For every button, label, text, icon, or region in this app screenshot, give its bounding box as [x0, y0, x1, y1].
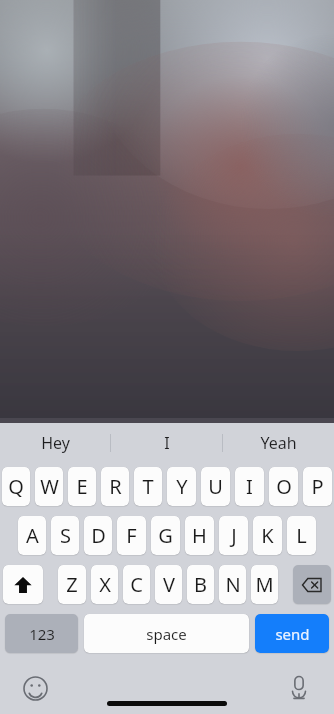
button[interactable]: Dictation — [282, 671, 316, 705]
staticText: send — [275, 624, 310, 644]
button[interactable]: A — [18, 516, 46, 555]
staticText: L — [296, 522, 307, 549]
button[interactable]: K — [253, 516, 282, 555]
staticText: Hey — [41, 432, 70, 454]
button[interactable]: U — [201, 467, 230, 506]
staticText: K — [261, 522, 274, 549]
staticText: Z — [66, 571, 78, 598]
button[interactable]: send — [255, 614, 329, 653]
button[interactable]: W — [35, 467, 63, 506]
staticText: F — [126, 522, 137, 549]
staticText: W — [40, 473, 59, 500]
staticText: U — [208, 473, 223, 500]
staticText: X — [99, 571, 111, 598]
staticText: N — [225, 571, 241, 598]
staticText: A — [26, 522, 39, 549]
staticText: B — [194, 571, 207, 598]
button[interactable]: J — [219, 516, 248, 555]
button[interactable]: Z — [58, 565, 86, 604]
button[interactable]: O — [269, 467, 298, 506]
button[interactable]: 123 — [5, 614, 78, 653]
staticText: G — [158, 522, 173, 549]
staticText: I — [246, 473, 253, 500]
staticText: R — [109, 473, 122, 500]
button[interactable]: C — [123, 565, 150, 604]
staticText: J — [231, 522, 237, 549]
button[interactable]: H — [185, 516, 214, 555]
button[interactable]: I — [235, 467, 264, 506]
button[interactable]: Shift — [3, 565, 43, 604]
button[interactable]: S — [51, 516, 79, 555]
button[interactable]: T — [134, 467, 162, 506]
staticText: 123 — [29, 624, 55, 644]
button[interactable]: space — [84, 614, 249, 653]
button[interactable]: X — [91, 565, 118, 604]
button[interactable]: Yeah — [223, 423, 334, 463]
button[interactable]: E — [68, 467, 96, 506]
staticText: S — [60, 522, 71, 549]
staticText: M — [255, 571, 274, 598]
staticText: H — [192, 522, 207, 549]
staticText: space — [146, 624, 187, 644]
staticText: P — [311, 473, 324, 500]
button[interactable]: Y — [167, 467, 196, 506]
button[interactable]: I — [111, 423, 222, 463]
button[interactable]: Hey — [0, 423, 110, 463]
button[interactable]: B — [187, 565, 214, 604]
staticText: Q — [8, 473, 24, 500]
staticText: C — [130, 571, 143, 598]
staticText: O — [276, 473, 292, 500]
button[interactable]: L — [287, 516, 316, 555]
staticText: Yeah — [260, 432, 297, 454]
staticText: Y — [176, 473, 188, 500]
button[interactable]: R — [101, 467, 129, 506]
button[interactable]: M — [251, 565, 278, 604]
button[interactable]: D — [84, 516, 112, 555]
staticText: E — [76, 473, 88, 500]
button[interactable]: N — [219, 565, 246, 604]
staticText: T — [142, 473, 154, 500]
staticText: I — [164, 432, 170, 454]
button[interactable]: P — [303, 467, 332, 506]
button[interactable]: V — [155, 565, 182, 604]
staticText: D — [91, 522, 106, 549]
button[interactable]: Emoji keyboard — [18, 671, 52, 705]
button[interactable]: G — [151, 516, 180, 555]
staticText: V — [163, 571, 175, 598]
button[interactable]: Q — [2, 467, 30, 506]
button[interactable]: F — [117, 516, 146, 555]
button[interactable]: Delete — [293, 565, 331, 604]
